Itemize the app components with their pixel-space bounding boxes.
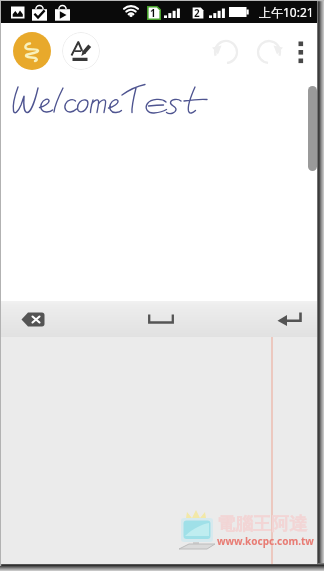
button[interactable]: Space [135, 301, 187, 337]
staticText: 2 [194, 6, 200, 20]
button[interactable]: Handwriting recognition [62, 32, 100, 70]
button[interactable]: Backspace [5, 301, 61, 337]
staticText: 電腦王阿達 [217, 513, 317, 536]
button[interactable]: Undo [210, 36, 242, 68]
button[interactable]: Draw [13, 32, 51, 70]
staticText: 1 [150, 6, 156, 20]
button[interactable]: Redo [253, 36, 285, 68]
button[interactable]: More options [289, 37, 313, 65]
button[interactable]: Enter [265, 301, 313, 337]
staticText: www.kocpc.com.tw [217, 534, 317, 548]
staticText: 上午10:21 [259, 4, 314, 20]
